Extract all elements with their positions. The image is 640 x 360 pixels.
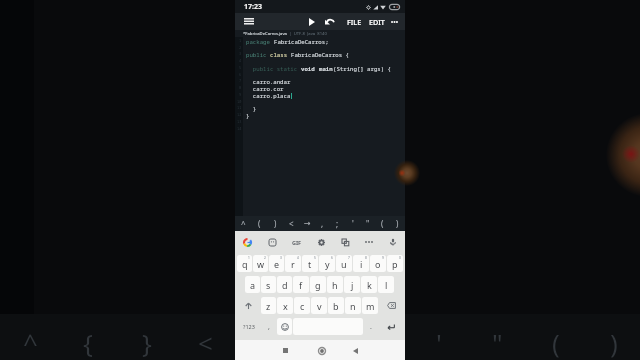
button[interactable]: a (245, 276, 260, 293)
staticText: f (299, 279, 303, 291)
staticText: 2 (264, 256, 266, 260)
staticText: , (377, 325, 384, 360)
button[interactable]: FILE (345, 13, 363, 30)
button[interactable]: ( (251, 216, 267, 231)
button[interactable]: Comma (262, 318, 276, 335)
staticText: v (317, 300, 322, 312)
button[interactable]: p (387, 255, 403, 272)
button[interactable]: ( (375, 216, 390, 231)
button[interactable]: r (285, 255, 301, 272)
button[interactable]: ^ (235, 216, 251, 231)
button[interactable]: g (310, 276, 326, 293)
button[interactable]: Sticker (260, 231, 285, 253)
button[interactable]: Emoji (277, 318, 292, 335)
button[interactable]: d (277, 276, 292, 293)
button[interactable]: → (299, 216, 315, 231)
button[interactable]: s (261, 276, 276, 293)
button[interactable]: ' (345, 216, 360, 231)
staticText: 5 (314, 256, 316, 260)
staticText: | UTF-8 Java 8140 (287, 31, 327, 37)
staticText: y (325, 258, 330, 270)
button[interactable]: ) (267, 216, 283, 231)
button[interactable]: Settings (309, 231, 333, 253)
staticText: 2 (239, 45, 242, 50)
button[interactable]: q (237, 255, 252, 272)
button[interactable]: c (294, 297, 310, 314)
staticText: p (392, 258, 398, 270)
button[interactable]: k (361, 276, 377, 293)
staticText: i (360, 258, 363, 270)
button[interactable]: u (336, 255, 352, 272)
button[interactable]: v (311, 297, 327, 314)
button[interactable]: Run (304, 14, 319, 29)
button[interactable]: z (261, 297, 276, 314)
staticText: 6 (239, 72, 242, 77)
button[interactable]: ; (330, 216, 345, 231)
staticText: b (333, 300, 339, 312)
staticText: 7 (348, 256, 350, 260)
button[interactable]: Backspace (379, 297, 403, 314)
staticText: package (246, 38, 274, 46)
button[interactable]: y (319, 255, 335, 272)
button[interactable]: w (253, 255, 268, 272)
button[interactable]: More options (387, 14, 402, 29)
button[interactable]: ?123 (237, 318, 261, 335)
staticText: } (246, 105, 257, 113)
button[interactable]: ) (390, 216, 405, 231)
button[interactable]: Enter (379, 318, 403, 335)
button[interactable]: i (353, 255, 369, 272)
button[interactable]: Translate (333, 231, 357, 253)
staticText: ( (258, 218, 261, 229)
button[interactable]: < (283, 216, 299, 231)
button[interactable]: l (378, 276, 394, 293)
staticText: FabricaDeCarros; (274, 38, 329, 46)
button[interactable]: Google search (235, 231, 260, 253)
button[interactable]: j (344, 276, 360, 293)
staticText: z (266, 300, 271, 312)
button[interactable]: Shift (237, 297, 260, 314)
button[interactable]: Home (313, 342, 330, 359)
button[interactable]: Recents (277, 342, 294, 359)
button[interactable]: Period (364, 318, 378, 335)
staticText: carro.cor (246, 85, 284, 93)
staticText: } (246, 112, 250, 120)
button[interactable]: More (357, 231, 381, 253)
button[interactable]: Menu (242, 15, 255, 28)
button[interactable]: m (362, 297, 378, 314)
button[interactable]: , (315, 216, 330, 231)
staticText: ' (436, 325, 442, 360)
staticText: j (351, 279, 354, 291)
staticText: x (283, 300, 288, 312)
button[interactable]: Voice input (381, 231, 405, 253)
staticText: ( (381, 218, 384, 229)
staticText: 5 (239, 65, 242, 70)
button[interactable]: t (302, 255, 318, 272)
button[interactable]: " (360, 216, 375, 231)
staticText: " (492, 325, 503, 360)
button[interactable]: b (328, 297, 344, 314)
staticText: public static (246, 65, 301, 73)
staticText: s (266, 279, 271, 291)
button[interactable]: GIF (285, 231, 309, 253)
staticText: a (250, 279, 256, 291)
button[interactable]: Undo (322, 14, 337, 29)
staticText: { (83, 325, 93, 360)
staticText: ^ (241, 218, 246, 229)
staticText: 7 (239, 78, 242, 83)
button[interactable]: EDIT (367, 13, 386, 30)
button[interactable]: e (269, 255, 284, 272)
staticText: 8 (239, 85, 242, 90)
staticText: . (370, 322, 372, 332)
button[interactable]: o (370, 255, 386, 272)
staticText: 12 (237, 112, 242, 117)
button[interactable]: Back (347, 342, 364, 359)
button[interactable]: f (293, 276, 309, 293)
staticText: FILE (347, 17, 362, 27)
staticText: r (291, 258, 295, 270)
button[interactable]: n (345, 297, 361, 314)
staticText: *FabricaDeCarros.java (243, 31, 287, 37)
staticText: ?123 (243, 323, 255, 330)
button[interactable]: x (277, 297, 293, 314)
button[interactable]: h (327, 276, 343, 293)
